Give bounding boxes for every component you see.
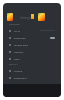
button[interactable]: App logo [7,13,13,21]
staticText: Data [14,57,20,60]
staticText: NETWORK [9,23,20,26]
button[interactable]: Alerts [31,14,34,19]
button[interactable]: Wi-Fi [3,27,61,34]
staticText: MyNetwork 5G [40,29,55,32]
button[interactable]: Brightness [3,74,61,81]
button[interactable]: Bluetooth [3,34,61,41]
staticText: Brightness [14,76,27,79]
staticText: Theme [14,69,23,72]
staticText: Mobile data [14,43,28,46]
staticText: Hotspot [14,50,24,53]
button[interactable]: Theme [3,67,61,74]
button[interactable]: Profile [38,13,45,21]
staticText: Bluetooth [14,36,26,39]
button[interactable]: Hotspot [3,48,61,55]
button[interactable]: Mobile data [3,41,61,48]
staticText: DISPLAY [9,63,18,66]
staticText: Settings [20,16,30,20]
staticText: Wi-Fi [14,29,20,32]
button[interactable]: Data [3,55,61,62]
